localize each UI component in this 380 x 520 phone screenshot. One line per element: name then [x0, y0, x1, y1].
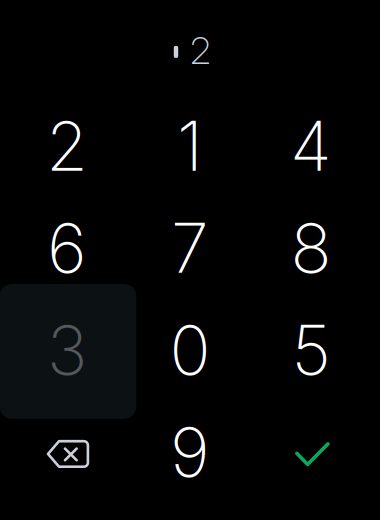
- staticText: 7: [171, 207, 209, 289]
- button[interactable]: 9: [128, 402, 252, 502]
- button[interactable]: 3: [5, 300, 129, 400]
- button[interactable]: Confirm: [249, 402, 373, 502]
- staticText: 2: [190, 28, 211, 73]
- button[interactable]: 0: [128, 300, 252, 400]
- button[interactable]: 2: [5, 96, 129, 196]
- staticText: 0: [169, 309, 210, 391]
- button[interactable]: Delete: [5, 402, 129, 502]
- staticText: 4: [290, 105, 332, 187]
- staticText: 3: [47, 309, 87, 391]
- button[interactable]: 8: [249, 198, 373, 298]
- staticText: 8: [290, 207, 331, 289]
- staticText: 9: [170, 411, 210, 493]
- staticText: 6: [47, 207, 87, 289]
- button[interactable]: 1: [128, 96, 252, 196]
- staticText: 1: [177, 105, 203, 187]
- staticText: 5: [291, 309, 330, 391]
- button[interactable]: 7: [128, 198, 252, 298]
- button[interactable]: 4: [249, 96, 373, 196]
- button[interactable]: 6: [5, 198, 129, 298]
- button[interactable]: 5: [249, 300, 373, 400]
- staticText: 2: [46, 105, 88, 187]
